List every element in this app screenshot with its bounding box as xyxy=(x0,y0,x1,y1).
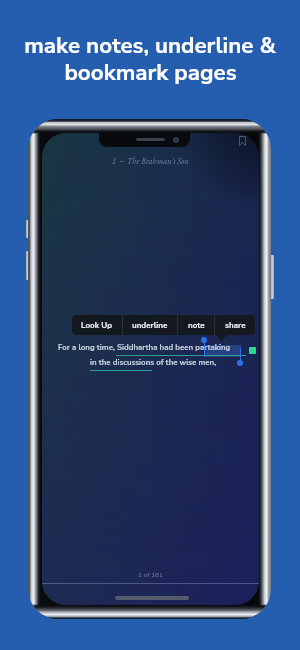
staticText: 1 – The Brahman's Son xyxy=(112,156,189,167)
button[interactable]: Look Up xyxy=(72,315,122,335)
staticText: underline xyxy=(132,320,168,331)
staticText: share xyxy=(225,320,246,331)
button[interactable]: underline xyxy=(123,315,177,335)
button[interactable]: share xyxy=(215,315,255,335)
staticText: bookmark pages xyxy=(64,57,237,88)
staticText: Look Up xyxy=(81,320,113,331)
staticText: For a long time, Siddhartha had been par… xyxy=(58,342,231,353)
staticText: make notes, underline & xyxy=(24,30,276,61)
staticText: 1 of 181 xyxy=(138,571,163,580)
button[interactable]: note xyxy=(178,315,214,335)
button[interactable]: Bookmark xyxy=(232,133,252,151)
staticText: note xyxy=(188,320,205,331)
staticText: in the discussions of the wise men, xyxy=(90,357,217,368)
